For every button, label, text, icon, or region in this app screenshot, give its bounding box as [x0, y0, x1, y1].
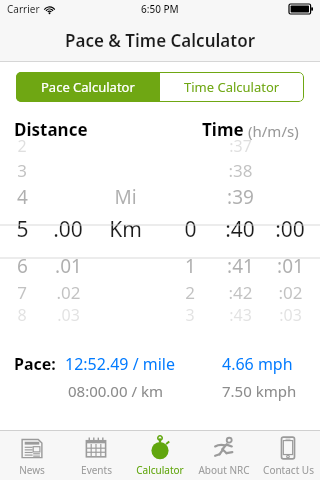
staticText: .02 — [56, 281, 81, 304]
staticText: About NRC — [198, 463, 250, 477]
staticText: 4.66 mph — [222, 353, 293, 375]
staticText: Pace: — [14, 353, 56, 375]
staticText: 4 — [17, 184, 28, 210]
staticText: :37 — [229, 135, 252, 157]
staticText: 3 — [185, 304, 195, 326]
button[interactable]: Events — [64, 431, 128, 480]
staticText: .00 — [53, 215, 83, 244]
staticText: Events — [81, 463, 112, 477]
staticText: :40 — [225, 215, 255, 244]
staticText: 08:00.00 / km — [68, 381, 163, 401]
staticText: Distance — [14, 118, 88, 141]
staticText: Time Calculator — [184, 78, 280, 96]
staticText: 0 — [184, 215, 197, 244]
staticText: Pace Calculator — [41, 78, 135, 96]
staticText: 12:52.49 / mile — [65, 353, 176, 375]
button[interactable]: News — [0, 431, 64, 480]
staticText: 3 — [17, 159, 27, 182]
staticText: Calculator — [136, 463, 184, 477]
staticText: Contact Us — [263, 463, 314, 477]
staticText: 6:50 PM — [141, 2, 179, 16]
staticText: :03 — [279, 304, 302, 326]
staticText: :02 — [278, 281, 303, 304]
staticText: Carrier — [7, 2, 40, 16]
staticText: :38 — [228, 159, 253, 182]
staticText: (h/m/s) — [248, 121, 299, 141]
button[interactable]: Calculator — [128, 431, 192, 480]
staticText: Time — [202, 118, 244, 141]
button[interactable]: Contact Us — [256, 431, 320, 480]
staticText: 5 — [16, 215, 29, 244]
button[interactable]: About NRC — [192, 431, 256, 480]
staticText: :01 — [277, 253, 304, 279]
button[interactable]: Pace Calculator — [16, 72, 160, 102]
staticText: 2 — [17, 135, 27, 157]
staticText: 6 — [17, 253, 28, 279]
button[interactable]: Time Calculator — [160, 72, 304, 102]
staticText: 8 — [17, 304, 27, 326]
staticText: 7 — [17, 281, 27, 304]
staticText: :39 — [227, 184, 254, 210]
staticText: :43 — [229, 304, 252, 326]
staticText: Km — [109, 215, 142, 244]
staticText: .01 — [55, 253, 82, 279]
staticText: Mi — [114, 184, 137, 210]
staticText: 2 — [185, 281, 195, 304]
staticText: 7.50 kmph — [222, 381, 297, 401]
staticText: News — [19, 463, 45, 477]
staticText: Pace & Time Calculator — [65, 29, 256, 52]
staticText: :41 — [227, 253, 254, 279]
staticText: 1 — [185, 253, 196, 279]
staticText: :00 — [275, 215, 305, 244]
staticText: :42 — [228, 281, 253, 304]
staticText: .03 — [57, 304, 80, 326]
